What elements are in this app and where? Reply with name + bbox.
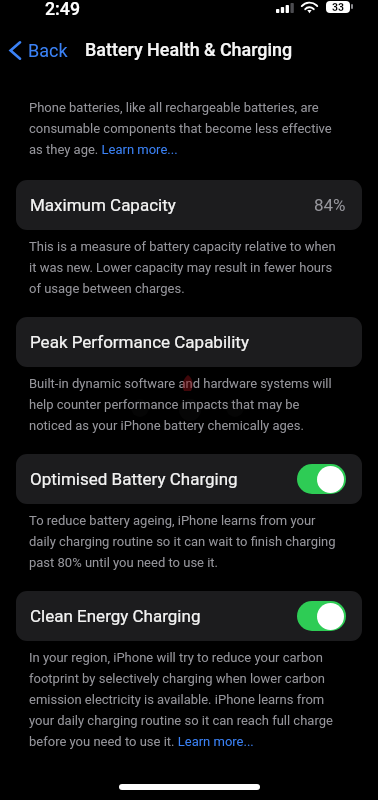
staticText: Battery Health & Charging	[85, 39, 293, 60]
button[interactable]: Back	[0, 40, 76, 61]
staticText: To reduce battery ageing, iPhone learns …	[29, 513, 345, 570]
staticText: This is a measure of battery capacity re…	[29, 239, 345, 296]
button[interactable]: Optimised Battery Charging	[16, 454, 362, 504]
staticText: 2:49	[45, 0, 81, 19]
staticText: Built-in dynamic software and hardware s…	[29, 376, 345, 433]
button[interactable]: Toggle	[297, 464, 346, 494]
button[interactable]: Maximum Capacity	[16, 180, 362, 230]
button[interactable]: Toggle	[297, 601, 346, 631]
button[interactable]: Clean Energy Charging	[16, 591, 362, 641]
staticText: In your region, iPhone will try to reduc…	[29, 650, 345, 749]
staticText: Phone batteries, like all rechargeable b…	[29, 100, 345, 157]
staticText: Clean Energy Charging	[30, 606, 201, 626]
staticText: 84%	[314, 195, 346, 215]
staticText: Maximum Capacity	[30, 195, 176, 215]
button[interactable]: Peak Performance Capability	[16, 317, 362, 367]
staticText: Peak Performance Capability	[30, 332, 249, 352]
staticText: 33	[332, 1, 345, 13]
staticText: Optimised Battery Charging	[30, 469, 238, 489]
staticText: Back	[28, 40, 68, 61]
